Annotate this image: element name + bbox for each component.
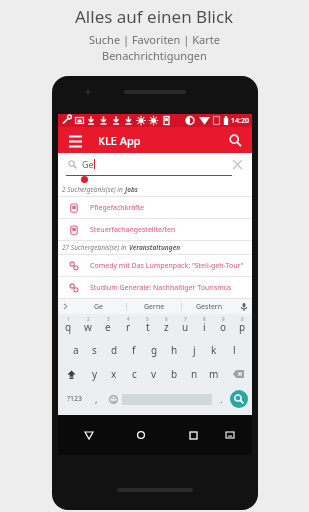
button[interactable]: d xyxy=(104,338,124,362)
staticText: m xyxy=(209,367,219,381)
staticText: b xyxy=(171,367,178,381)
staticText: t xyxy=(146,320,150,334)
button[interactable]: Switch keyboard xyxy=(222,427,238,443)
staticText: Gerne xyxy=(144,302,165,312)
button[interactable]: a xyxy=(66,338,85,362)
staticText: Gestern xyxy=(196,302,223,312)
staticText: k xyxy=(211,343,217,357)
staticText: e xyxy=(105,320,111,334)
staticText: x xyxy=(111,367,117,381)
button[interactable]: y xyxy=(85,362,104,386)
staticText: w xyxy=(84,320,92,334)
button[interactable]: Pflegefachkräfte xyxy=(58,197,252,218)
staticText: 27 Suchergebnis(se) in xyxy=(62,243,129,252)
staticText: 6 xyxy=(165,316,168,322)
staticText: 8 xyxy=(203,316,206,322)
staticText: q xyxy=(65,320,72,334)
button[interactable]: 0 xyxy=(233,314,252,338)
staticText: . xyxy=(220,393,223,405)
staticText: Suche | Favoriten | Karte xyxy=(89,32,220,47)
button[interactable]: 8 xyxy=(195,314,214,338)
staticText: u xyxy=(182,320,189,334)
button[interactable]: Ge xyxy=(72,299,126,314)
staticText: 9 xyxy=(222,316,225,322)
staticText: 7 xyxy=(184,316,187,322)
button[interactable]: Shift xyxy=(58,362,85,386)
staticText: a xyxy=(73,343,79,357)
staticText: Studium Generale: Nachhaltiger Tourismus xyxy=(90,283,232,293)
staticText: y xyxy=(92,367,98,381)
button[interactable]: Home xyxy=(133,427,149,443)
staticText: 4 xyxy=(127,316,130,322)
staticText: Alles auf einen Blick xyxy=(75,5,234,28)
button[interactable]: Comedy mit Das Lumpenpack: "Steil-geh-To… xyxy=(58,255,252,276)
button[interactable]: n xyxy=(184,362,204,386)
staticText: n xyxy=(191,367,198,381)
button[interactable]: 6 xyxy=(157,314,176,338)
button[interactable]: More suggestions xyxy=(58,299,72,314)
button[interactable]: Search xyxy=(226,131,244,149)
staticText: l xyxy=(233,343,236,357)
button[interactable]: g xyxy=(144,338,164,362)
button[interactable]: 9 xyxy=(214,314,233,338)
button[interactable]: Back xyxy=(81,427,97,443)
button[interactable]: k xyxy=(204,338,224,362)
staticText: Benachrichtigungen xyxy=(102,48,207,63)
staticText: f xyxy=(132,343,136,357)
staticText: o xyxy=(220,320,227,334)
staticText: Ge xyxy=(82,158,94,170)
staticText: i xyxy=(203,320,206,334)
button[interactable]: Voice input xyxy=(236,299,252,314)
staticText: j xyxy=(193,343,196,357)
button[interactable]: Backspace xyxy=(224,362,252,386)
button[interactable]: , xyxy=(88,386,104,412)
button[interactable]: 1 xyxy=(58,314,78,338)
staticText: s xyxy=(92,343,97,357)
staticText: 3 xyxy=(107,316,110,322)
staticText: KLE App xyxy=(98,133,141,148)
button[interactable]: l xyxy=(224,338,244,362)
button[interactable]: b xyxy=(164,362,184,386)
staticText: Comedy mit Das Lumpenpack: "Steil-geh-To… xyxy=(90,261,244,271)
staticText: 2 xyxy=(87,316,90,322)
button[interactable]: 5 xyxy=(138,314,157,338)
button[interactable]: s xyxy=(85,338,104,362)
staticText: Veranstaltungen xyxy=(129,243,181,252)
staticText: 14:20 xyxy=(231,116,249,126)
button[interactable]: Clear xyxy=(230,157,244,171)
staticText: , xyxy=(95,393,98,405)
button[interactable]: v xyxy=(144,362,164,386)
button[interactable]: f xyxy=(124,338,144,362)
button[interactable]: Steuerfachangestellte/ten xyxy=(58,219,252,240)
staticText: c xyxy=(132,367,137,381)
staticText: p xyxy=(239,320,246,334)
staticText: Pflegefachkräfte xyxy=(90,203,144,213)
button[interactable]: 4 xyxy=(118,314,138,338)
button[interactable]: 3 xyxy=(98,314,118,338)
button[interactable]: h xyxy=(164,338,184,362)
staticText: ?123 xyxy=(67,394,83,404)
button[interactable]: Studium Generale: Nachhaltiger Tourismus xyxy=(58,277,252,298)
staticText: v xyxy=(151,367,157,381)
button[interactable]: Recents xyxy=(185,427,201,443)
button[interactable]: . xyxy=(212,386,230,412)
button[interactable]: Emoji xyxy=(104,386,122,412)
button[interactable]: Search xyxy=(230,390,248,408)
button[interactable]: 7 xyxy=(176,314,195,338)
button[interactable]: Gerne xyxy=(127,299,181,314)
staticText: Ge xyxy=(94,302,104,312)
button[interactable]: c xyxy=(124,362,144,386)
button[interactable]: Gestern xyxy=(182,299,236,314)
staticText: Steuerfachangestellte/ten xyxy=(90,225,176,235)
button[interactable]: m xyxy=(204,362,224,386)
button[interactable]: Menu xyxy=(66,131,84,149)
staticText: 5 xyxy=(146,316,149,322)
button[interactable]: x xyxy=(104,362,124,386)
staticText: r xyxy=(126,320,131,334)
staticText: z xyxy=(164,320,169,334)
button[interactable]: ?123 xyxy=(62,386,88,412)
staticText: 2 Suchergebnis(se) in xyxy=(62,185,125,194)
button[interactable]: j xyxy=(184,338,204,362)
button[interactable]: 2 xyxy=(78,314,98,338)
